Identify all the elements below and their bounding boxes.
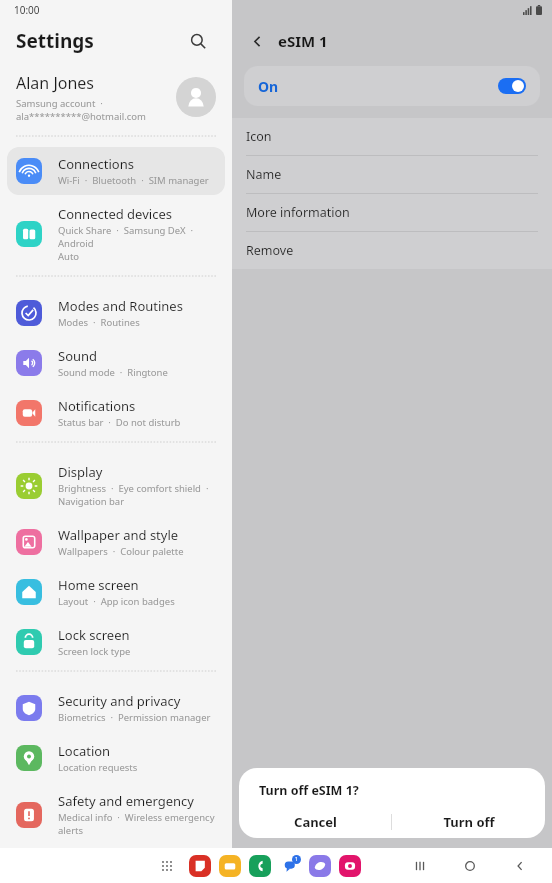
staticText: Status bar · Do not disturb <box>58 416 181 429</box>
button[interactable]: Recents <box>408 854 432 878</box>
button[interactable]: Search <box>184 27 212 55</box>
button[interactable] <box>249 855 271 877</box>
staticText: Cancel <box>294 813 337 831</box>
staticText: Modes · Routines <box>58 316 140 329</box>
staticText: On <box>258 77 498 96</box>
button[interactable]: Wallpaper and style <box>7 518 225 566</box>
button[interactable]: Location <box>7 734 225 782</box>
button[interactable]: Notifications <box>7 389 225 437</box>
button[interactable] <box>189 855 211 877</box>
staticText: Connected devices <box>58 205 172 223</box>
button[interactable]: Alan Jones <box>0 62 232 132</box>
staticText: Lock screen <box>58 626 130 644</box>
button[interactable]: Name <box>232 156 552 193</box>
staticText: Safety and emergency <box>58 792 194 810</box>
button[interactable]: Safety and emergency <box>7 784 225 845</box>
staticText: 1 <box>295 856 298 863</box>
staticText: More information <box>246 204 350 221</box>
staticText: Alan Jones <box>16 72 95 94</box>
staticText: Security and privacy <box>58 692 181 710</box>
button[interactable]: Sound <box>7 339 225 387</box>
staticText: 10:00 <box>14 3 40 17</box>
staticText: Samsung account · <box>16 97 103 110</box>
staticText: Notifications <box>58 397 136 415</box>
button[interactable]: On <box>244 66 540 106</box>
button[interactable]: Display <box>7 455 225 516</box>
staticText: Turn off <box>443 813 495 831</box>
staticText: Wi-Fi · Bluetooth · SIM manager <box>58 174 209 187</box>
staticText: Remove <box>246 242 294 259</box>
staticText: Wallpapers · Colour palette <box>58 545 184 558</box>
staticText: Layout · App icon badges <box>58 595 175 608</box>
button[interactable]: Home <box>458 854 482 878</box>
button[interactable]: Apps <box>155 854 179 878</box>
staticText: Turn off eSIM 1? <box>259 782 359 799</box>
button[interactable]: Turn off <box>392 806 545 838</box>
staticText: Modes and Routines <box>58 297 183 315</box>
button[interactable]: Modes and Routines <box>7 289 225 337</box>
staticText: Sound <box>58 347 98 365</box>
button[interactable]: Back <box>508 854 532 878</box>
staticText: Wallpaper and style <box>58 526 179 544</box>
button[interactable]: Connected devices <box>7 197 225 271</box>
staticText: Settings <box>16 28 94 54</box>
staticText: Home screen <box>58 576 139 594</box>
staticText: Biometrics · Permission manager <box>58 711 211 724</box>
staticText: Icon <box>246 128 272 145</box>
staticText: Connections <box>58 155 134 173</box>
button[interactable]: Remove <box>232 232 552 269</box>
button[interactable]: Back <box>244 28 270 54</box>
staticText: Sound mode · Ringtone <box>58 366 168 379</box>
button[interactable]: Home screen <box>7 568 225 616</box>
staticText: eSIM 1 <box>278 31 328 51</box>
staticText: ala**********@hotmail.com <box>16 110 146 123</box>
button[interactable] <box>219 855 241 877</box>
button[interactable]: Connections <box>7 147 225 195</box>
staticText: Medical info · Wireless emergency alerts <box>58 811 215 837</box>
staticText: Quick Share · Samsung DeX · Android Auto <box>58 224 216 263</box>
staticText: Location requests <box>58 761 138 774</box>
staticText: Name <box>246 166 282 183</box>
staticText: Brightness · Eye comfort shield · Naviga… <box>58 482 209 508</box>
button[interactable] <box>339 855 361 877</box>
staticText: Location <box>58 742 111 760</box>
staticText: Display <box>58 463 103 481</box>
button[interactable] <box>279 855 301 877</box>
button[interactable]: Icon <box>232 118 552 155</box>
button[interactable]: Security and privacy <box>7 684 225 732</box>
staticText: Screen lock type <box>58 645 131 658</box>
button[interactable]: Lock screen <box>7 618 225 666</box>
button[interactable] <box>309 855 331 877</box>
button[interactable]: Cancel <box>239 806 391 838</box>
button[interactable]: More information <box>232 194 552 231</box>
